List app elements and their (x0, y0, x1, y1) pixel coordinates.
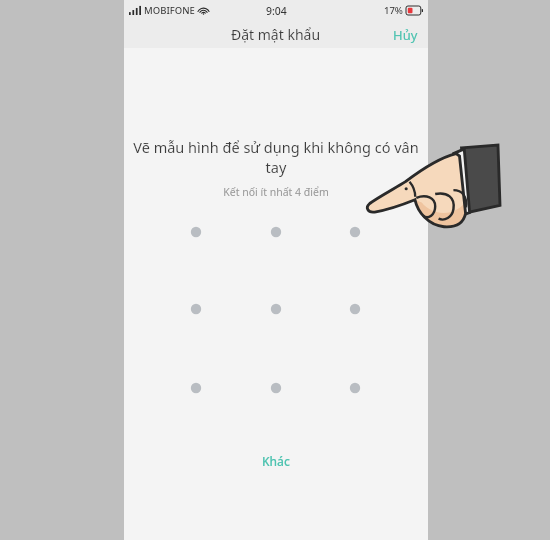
staticText: Kết nối ít nhất 4 điểm (124, 185, 428, 199)
button[interactable]: Hủy (383, 22, 428, 48)
button[interactable]: Khác (250, 447, 302, 475)
staticText: MOBIFONE (144, 4, 195, 17)
button[interactable]: Pattern grid (124, 223, 428, 403)
staticText: Vẽ mẫu hình để sử dụng khi không có vân … (124, 137, 428, 177)
staticText: 9:04 (266, 4, 287, 18)
staticText: 17% (384, 4, 403, 17)
staticText: Khác (262, 453, 290, 469)
staticText: Đặt mật khẩu (231, 25, 321, 44)
staticText: Hủy (393, 26, 418, 44)
